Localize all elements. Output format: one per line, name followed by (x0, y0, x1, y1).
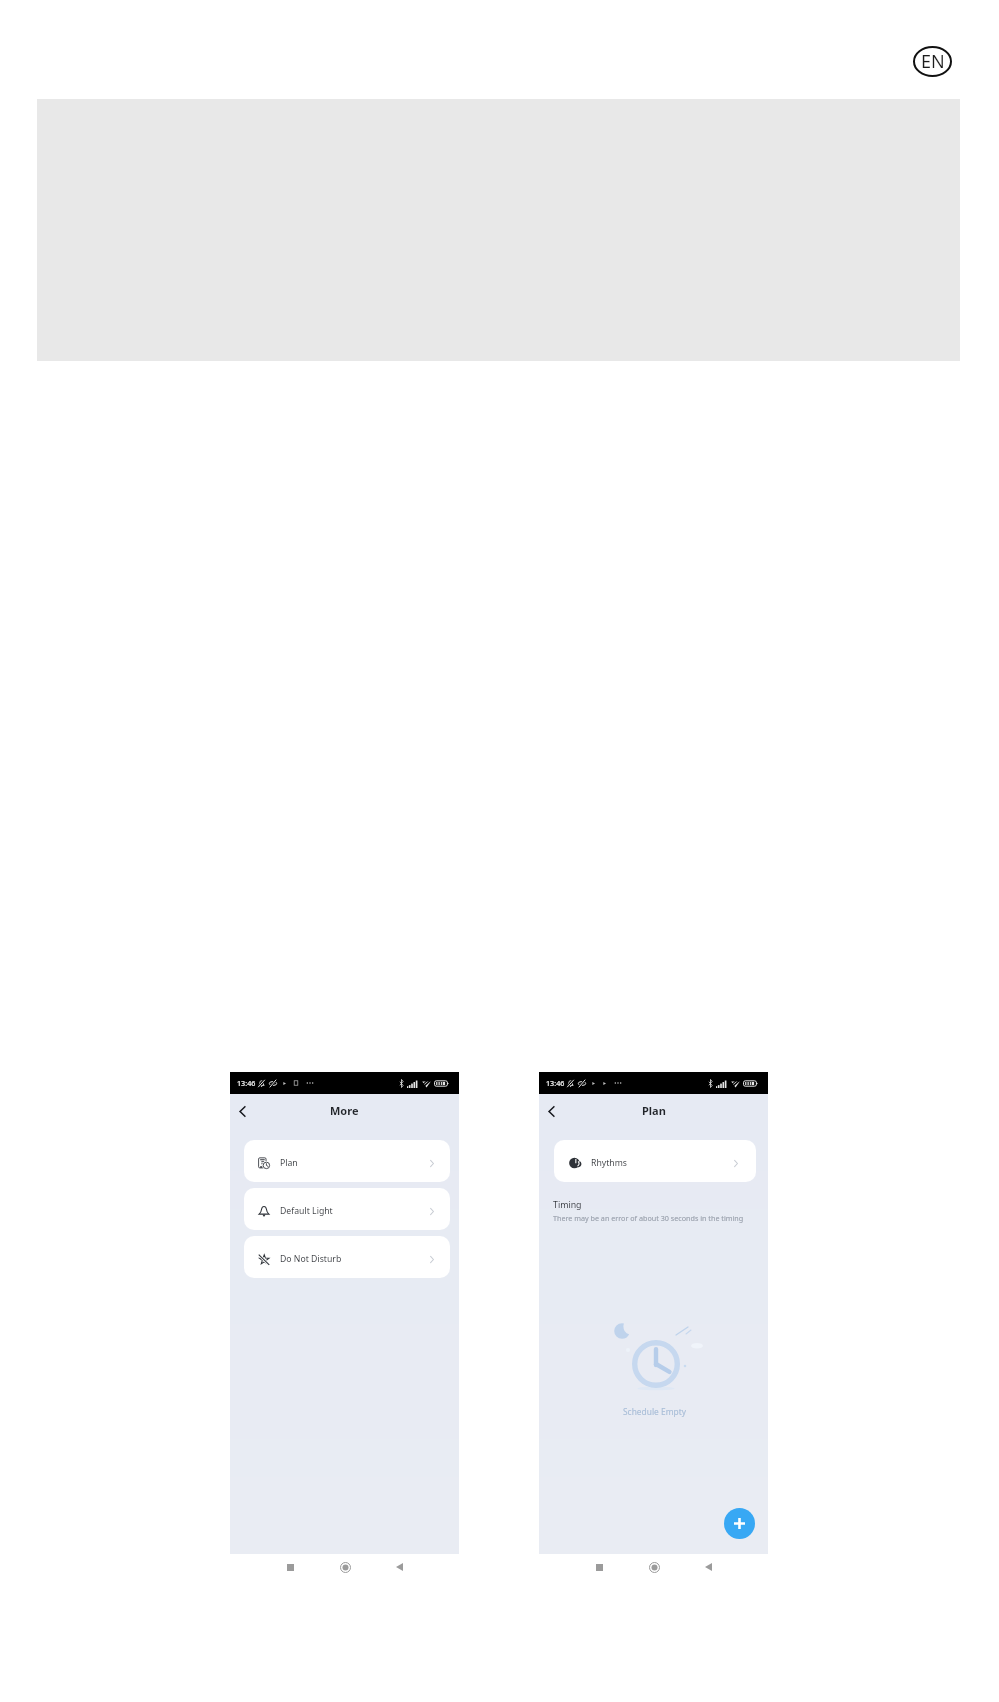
button[interactable]: Add schedule (724, 1508, 755, 1539)
staticText: Rhythms (591, 1157, 627, 1169)
staticText: More (330, 1103, 359, 1118)
button[interactable]: Do Not Disturb (244, 1236, 450, 1278)
button[interactable]: Recents (281, 1558, 299, 1576)
staticText: EN (921, 49, 945, 74)
button[interactable]: Home (645, 1558, 663, 1576)
button[interactable]: Language EN (913, 46, 952, 77)
button[interactable]: Recents (590, 1558, 608, 1576)
button[interactable]: Back (699, 1558, 717, 1576)
staticText: Default Light (280, 1205, 333, 1217)
staticText: Plan (280, 1157, 298, 1169)
staticText: Timing (553, 1199, 582, 1211)
button[interactable]: Back (231, 1100, 253, 1122)
staticText: Plan (642, 1103, 666, 1118)
staticText: Schedule Empty (623, 1406, 686, 1417)
staticText: 13:46 (546, 1078, 565, 1088)
staticText: There may be an error of about 30 second… (553, 1213, 744, 1223)
button[interactable]: Default Light (244, 1188, 450, 1230)
button[interactable]: Home (336, 1558, 354, 1576)
button[interactable]: Rhythms (554, 1140, 756, 1182)
button[interactable]: Back (540, 1100, 562, 1122)
button[interactable]: Back (390, 1558, 408, 1576)
button[interactable]: Plan (244, 1140, 450, 1182)
staticText: 13:46 (237, 1078, 256, 1088)
staticText: Do Not Disturb (280, 1253, 342, 1265)
